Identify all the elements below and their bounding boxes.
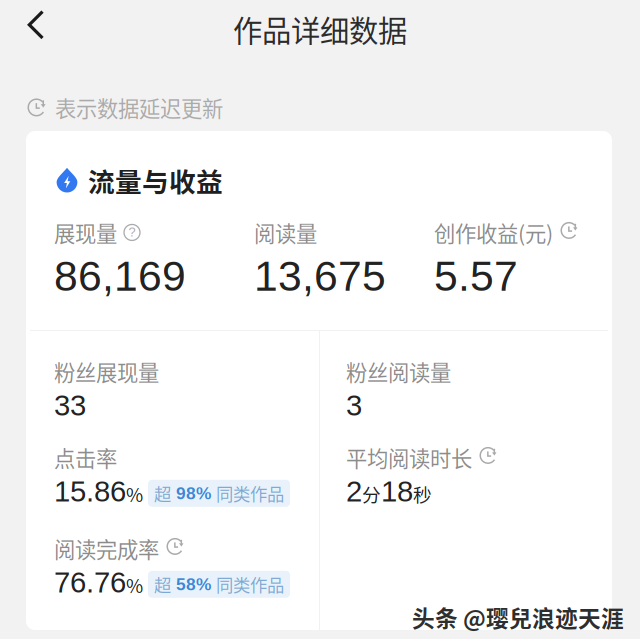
staticText: 同类作品	[216, 572, 284, 597]
staticText: 76.76	[54, 566, 126, 599]
staticText: 头条 @璎兒浪迹天涯	[412, 601, 624, 633]
staticText: 13,675	[254, 252, 386, 300]
staticText: 秒	[413, 480, 432, 507]
staticText: 平均阅读时长	[346, 442, 472, 473]
staticText: 18	[381, 475, 413, 508]
staticText: 作品详细数据	[233, 8, 407, 50]
staticText: 创作收益(元)	[434, 217, 553, 248]
staticText: 粉丝展现量	[54, 356, 159, 387]
staticText: 点击率	[54, 442, 117, 473]
staticText: %	[126, 571, 143, 598]
staticText: 粉丝阅读量	[346, 356, 451, 387]
staticText	[211, 484, 216, 503]
staticText: 33	[54, 389, 86, 422]
staticText: 98%	[176, 484, 211, 503]
staticText: 2	[346, 475, 362, 508]
staticText: %	[126, 480, 143, 507]
staticText: 超	[154, 481, 171, 506]
staticText: 流量与收益	[88, 161, 223, 200]
staticText: 同类作品	[216, 481, 284, 506]
staticText: 分	[362, 480, 381, 507]
staticText: 58%	[176, 575, 211, 594]
staticText: 15.86	[54, 475, 126, 508]
button[interactable]: Back	[5, 0, 67, 53]
staticText: ?	[128, 225, 135, 239]
staticText: 86,169	[54, 252, 186, 300]
staticText: 3	[346, 389, 362, 422]
staticText: 阅读完成率	[54, 533, 159, 564]
staticText	[211, 575, 216, 594]
staticText: 超	[154, 572, 171, 597]
staticText: 展现量	[54, 217, 117, 248]
staticText: 5.57	[434, 252, 518, 300]
staticText: 阅读量	[254, 217, 317, 248]
staticText: 表示数据延迟更新	[55, 92, 223, 123]
